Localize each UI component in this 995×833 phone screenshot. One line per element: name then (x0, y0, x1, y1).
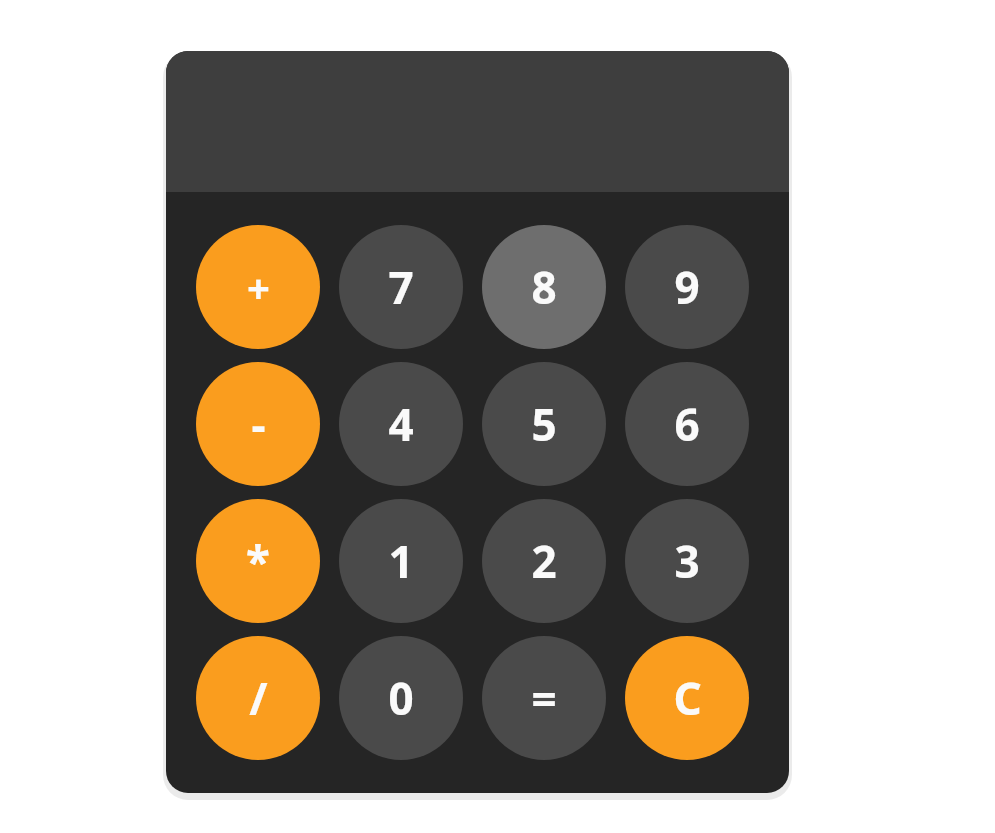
staticText: 0 (388, 668, 414, 728)
staticText: 4 (388, 394, 414, 454)
button[interactable]: Divide (196, 636, 320, 760)
staticText: 2 (531, 531, 557, 591)
button[interactable]: Five (482, 362, 606, 486)
staticText: - (251, 394, 266, 454)
button[interactable]: Six (625, 362, 749, 486)
button[interactable]: Nine (625, 225, 749, 349)
staticText: = (531, 668, 557, 728)
staticText: 5 (531, 394, 557, 454)
staticText: 3 (674, 531, 700, 591)
button[interactable]: Two (482, 499, 606, 623)
button[interactable]: Seven (339, 225, 463, 349)
button[interactable]: Minus (196, 362, 320, 486)
staticText: C (673, 668, 702, 728)
button[interactable]: Plus (196, 225, 320, 349)
button[interactable]: Multiply (196, 499, 320, 623)
staticText: 9 (674, 257, 700, 317)
staticText: / (249, 668, 268, 728)
button[interactable]: Display (166, 51, 789, 192)
staticText: 6 (674, 394, 700, 454)
staticText: 7 (388, 257, 414, 317)
staticText: * (246, 531, 270, 591)
staticText: 8 (531, 257, 557, 317)
button[interactable]: Four (339, 362, 463, 486)
button[interactable]: Clear (625, 636, 749, 760)
staticText: 1 (388, 531, 414, 591)
button[interactable]: Equals (482, 636, 606, 760)
button[interactable]: Three (625, 499, 749, 623)
button[interactable]: Zero (339, 636, 463, 760)
staticText: + (247, 260, 270, 314)
button[interactable]: Eight (482, 225, 606, 349)
button[interactable]: One (339, 499, 463, 623)
